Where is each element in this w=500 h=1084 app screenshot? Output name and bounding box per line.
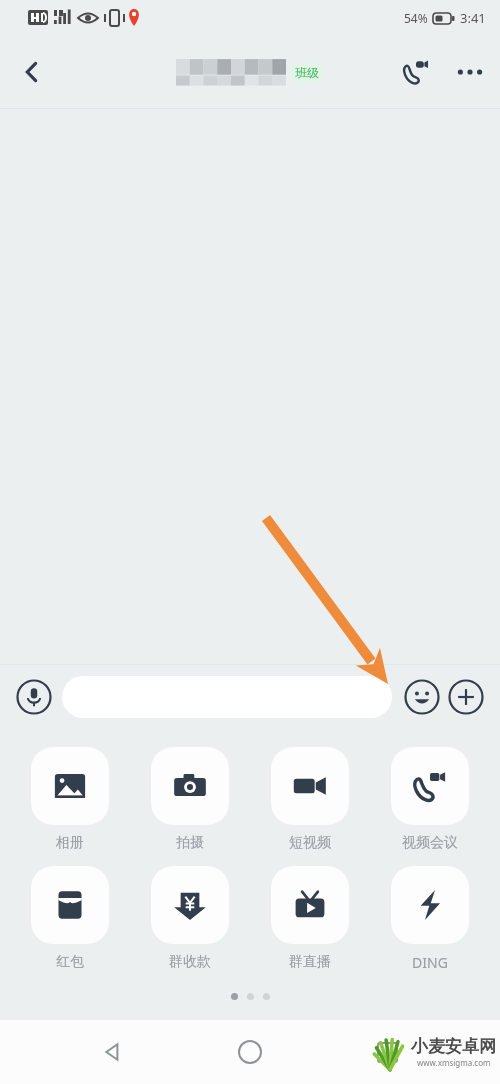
button[interactable]: Emoji [400, 675, 444, 719]
staticText: DING [412, 953, 448, 972]
staticText: 群直播 [289, 953, 331, 971]
button[interactable]: Voice input [12, 675, 56, 719]
button[interactable]: Home [226, 1028, 274, 1076]
button[interactable]: 短视频 [260, 747, 360, 852]
staticText: 短视频 [289, 834, 331, 852]
button[interactable]: 红包 [20, 866, 120, 971]
staticText: 54% [404, 10, 428, 26]
button[interactable]: DING [380, 866, 480, 972]
button[interactable] [62, 676, 392, 718]
staticText: www.xmsigma.com [417, 1057, 491, 1068]
staticText: 群收款 [169, 953, 211, 971]
staticText: 相册 [56, 834, 84, 852]
button[interactable]: 群收款 [140, 866, 240, 971]
button[interactable]: Back [89, 1028, 137, 1076]
staticText: 班级 [295, 65, 319, 80]
staticText: 视频会议 [402, 834, 458, 852]
button[interactable]: 群直播 [260, 866, 360, 971]
button[interactable]: 拍摄 [140, 747, 240, 852]
button[interactable]: 相册 [20, 747, 120, 852]
staticText: 小麦安卓网 [411, 1036, 496, 1057]
button[interactable]: Back [8, 48, 56, 96]
staticText: 拍摄 [176, 834, 204, 852]
staticText: 红包 [56, 953, 84, 971]
button[interactable]: More actions [444, 675, 488, 719]
button[interactable]: Recent apps [363, 1028, 411, 1076]
button[interactable]: Video call [392, 48, 440, 96]
button[interactable]: More options [446, 48, 494, 96]
staticText: 3:41 [460, 9, 486, 27]
button[interactable]: 视频会议 [380, 747, 480, 852]
